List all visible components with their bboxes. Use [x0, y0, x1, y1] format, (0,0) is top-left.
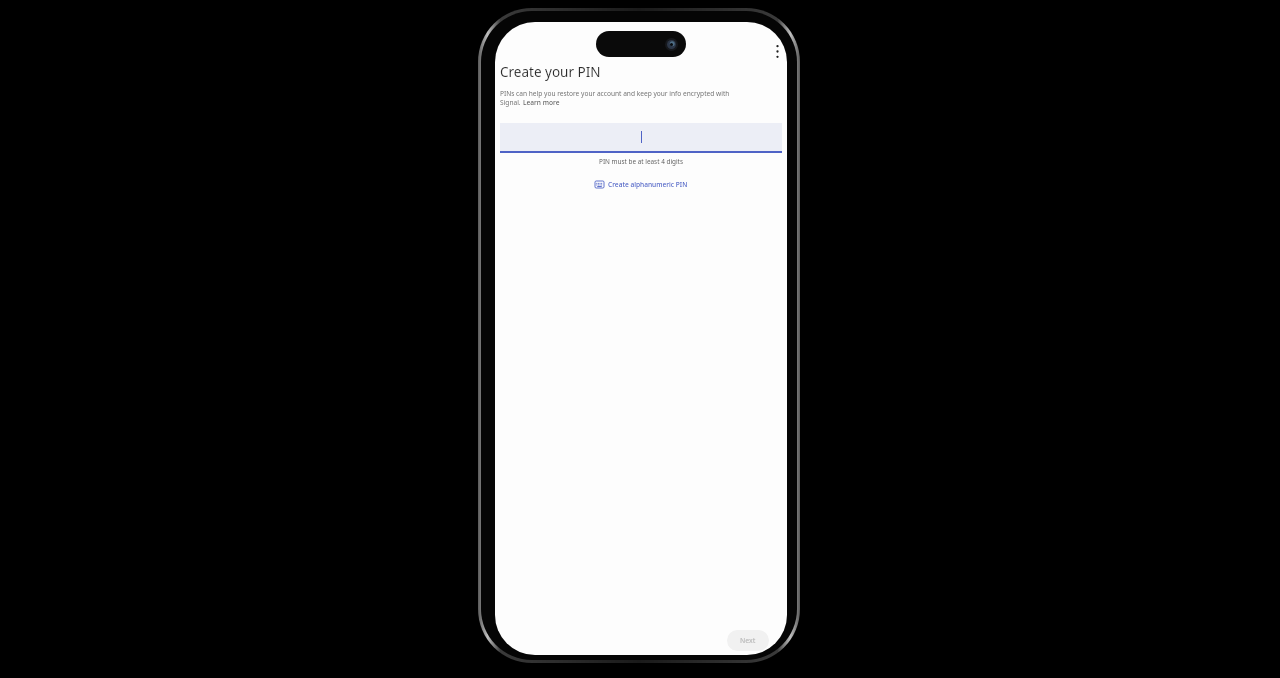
staticText: Signal.: [500, 98, 523, 107]
button[interactable]: [500, 123, 782, 153]
button[interactable]: More options: [769, 36, 785, 66]
button[interactable]: Next: [727, 630, 769, 651]
staticText: Create alphanumeric PIN: [608, 180, 688, 189]
staticText: Next: [740, 636, 756, 645]
staticText: Learn more: [523, 98, 560, 107]
button[interactable]: Learn more: [523, 98, 560, 107]
staticText: Create your PIN: [500, 63, 601, 81]
button[interactable]: Create alphanumeric PIN: [592, 178, 691, 191]
staticText: PIN must be at least 4 digits: [500, 157, 782, 166]
staticText: PINs can help you restore your account a…: [500, 89, 730, 98]
